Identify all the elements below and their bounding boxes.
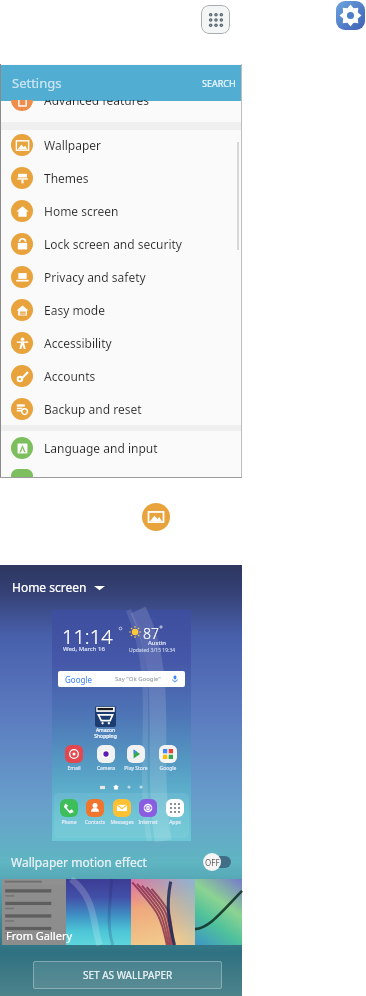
button[interactable]: Privacy and safety: [0, 260, 242, 293]
staticText: Austin: [148, 639, 166, 647]
staticText: Advanced features: [44, 100, 149, 108]
button[interactable]: Backup and reset: [0, 392, 242, 425]
button[interactable]: Phone: [55, 799, 83, 826]
staticText: Shopping: [94, 733, 117, 740]
staticText: 87: [143, 624, 159, 643]
button[interactable]: Camera: [92, 745, 120, 772]
staticText: Say "Ok Google": [115, 675, 161, 683]
button[interactable]: [2, 879, 66, 945]
button[interactable]: Wallpaper: [142, 503, 170, 531]
button[interactable]: Settings: [336, 1, 365, 30]
staticText: From Gallery: [6, 928, 73, 943]
staticText: Apps: [161, 819, 189, 826]
button[interactable]: Easy mode: [0, 293, 242, 326]
button[interactable]: Wallpaper motion effect toggle: [203, 853, 231, 871]
button[interactable]: Home screen: [0, 572, 105, 602]
button[interactable]: Email: [60, 745, 88, 772]
button[interactable]: Messages: [108, 799, 136, 826]
staticText: Home screen: [12, 579, 87, 595]
staticText: Amazon: [94, 727, 117, 734]
staticText: SEARCH: [202, 77, 236, 89]
staticText: Backup and reset: [44, 401, 142, 417]
button[interactable]: Advanced features: [0, 100, 242, 111]
staticText: Lock screen and security: [44, 236, 182, 252]
button[interactable]: Accounts: [0, 359, 242, 392]
staticText: Wallpaper: [44, 137, 102, 153]
button[interactable]: [195, 879, 242, 945]
staticText: Accessibility: [44, 335, 112, 351]
button[interactable]: Themes: [0, 161, 242, 194]
staticText: 11:14: [62, 623, 113, 650]
staticText: Contacts: [81, 819, 109, 826]
staticText: Camera: [92, 765, 120, 772]
staticText: Themes: [44, 170, 89, 186]
button[interactable]: Home screen: [0, 194, 242, 227]
staticText: SET AS WALLPAPER: [83, 968, 173, 982]
button[interactable]: Apps: [201, 5, 230, 34]
button[interactable]: Lock screen and security: [0, 227, 242, 260]
staticText: Home screen: [44, 203, 119, 219]
button[interactable]: Language and input: [0, 431, 242, 464]
button[interactable]: Amazon Shopping: [95, 706, 116, 727]
staticText: Messages: [108, 819, 136, 826]
staticText: OFF: [205, 857, 220, 868]
staticText: Wallpaper motion effect: [11, 854, 147, 870]
staticText: Accounts: [44, 368, 96, 384]
button[interactable]: SET AS WALLPAPER: [33, 961, 222, 989]
staticText: Updated 3/15 19:34: [129, 647, 176, 654]
staticText: Easy mode: [44, 302, 106, 318]
button[interactable]: Play Store: [122, 745, 150, 772]
staticText: Google: [154, 765, 182, 772]
staticText: Settings: [12, 74, 62, 92]
button[interactable]: Settings: [0, 65, 242, 101]
staticText: Language and input: [44, 440, 158, 456]
staticText: Internet: [134, 819, 162, 826]
button[interactable]: Google: [58, 671, 185, 687]
staticText: Play Store: [122, 765, 150, 772]
staticText: Email: [60, 765, 88, 772]
button[interactable]: SEARCH: [202, 77, 236, 89]
staticText: Privacy and safety: [44, 269, 146, 285]
button[interactable]: Wallpaper motion effect: [0, 846, 242, 878]
button[interactable]: Google: [154, 745, 182, 772]
button[interactable]: Wallpaper: [0, 128, 242, 161]
staticText: Wed, March 16: [63, 645, 105, 653]
staticText: Phone: [55, 819, 83, 826]
button[interactable]: Internet: [134, 799, 162, 826]
button[interactable]: [66, 879, 131, 945]
button[interactable]: [131, 879, 195, 945]
button[interactable]: Apps: [161, 799, 189, 826]
button[interactable]: Contacts: [81, 799, 109, 826]
button[interactable]: Accessibility: [0, 326, 242, 359]
staticText: Google: [65, 674, 92, 685]
